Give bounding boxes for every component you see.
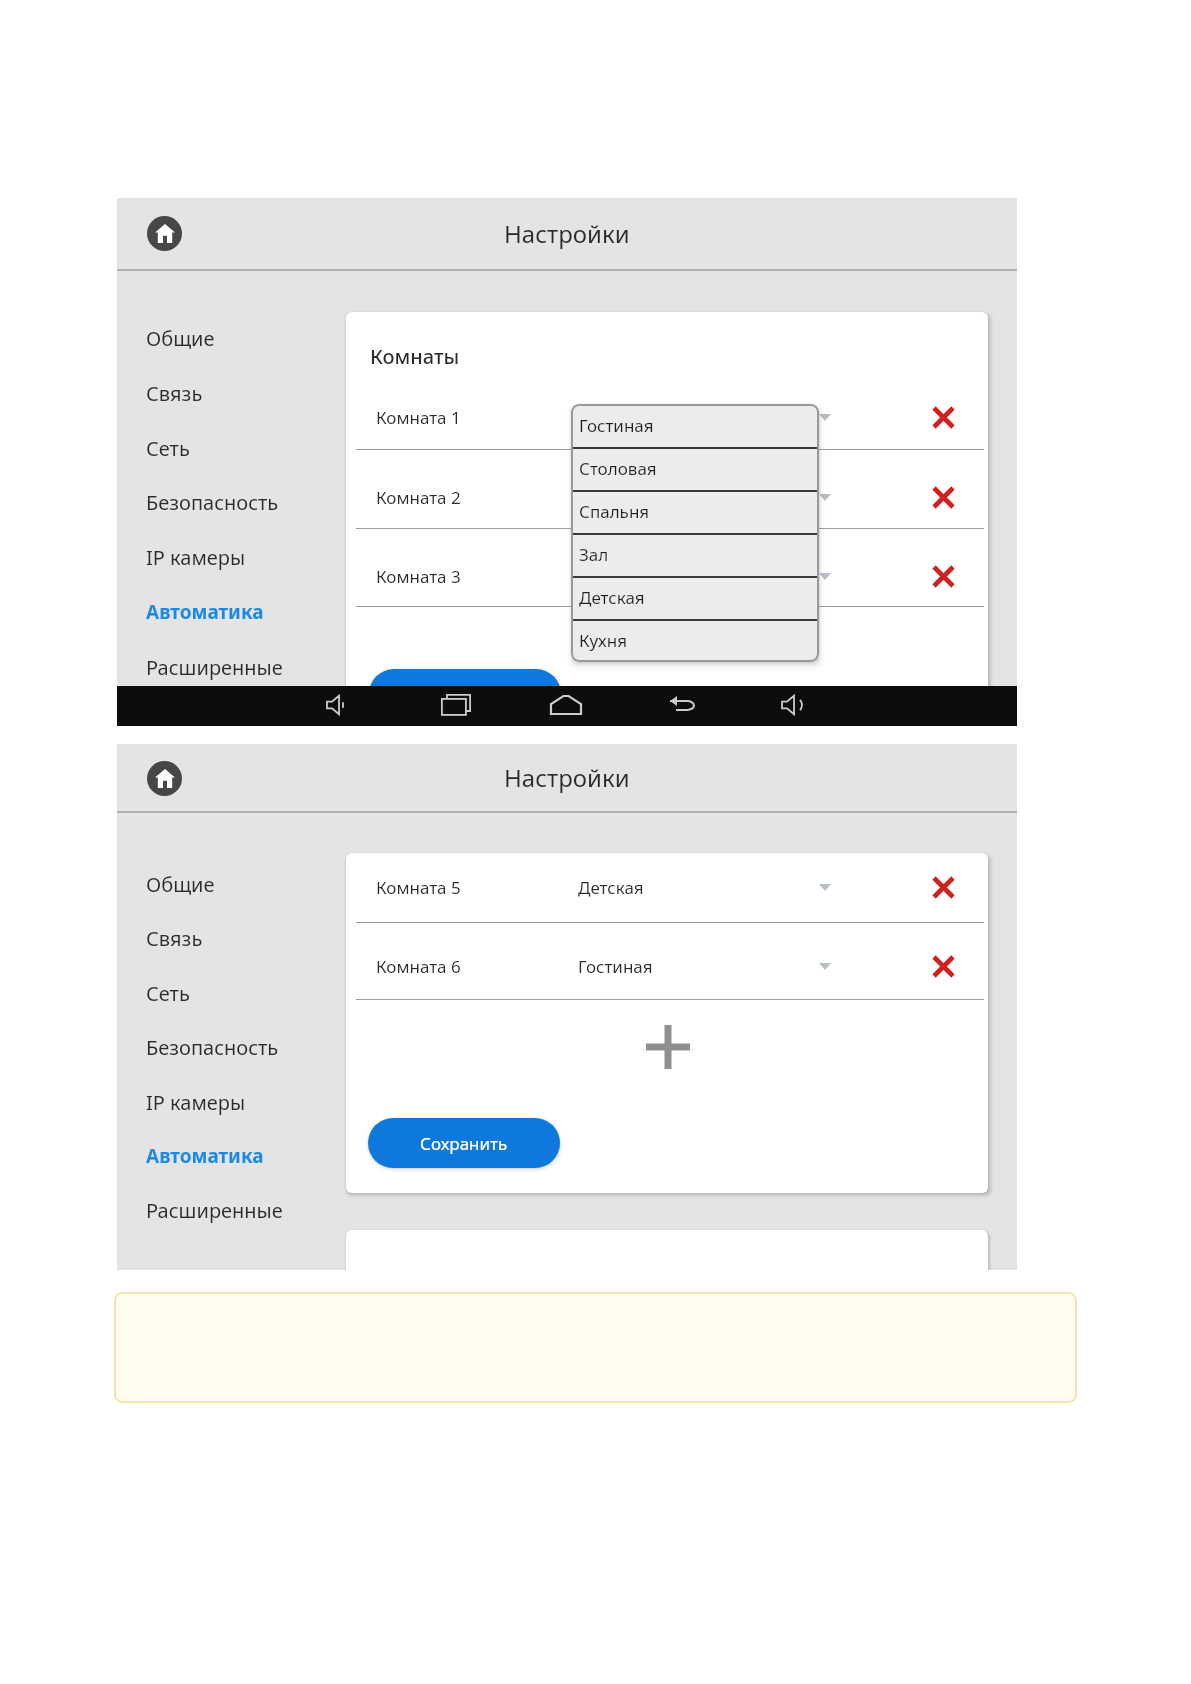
staticText: Автоматика xyxy=(146,1143,264,1169)
button[interactable]: Сеть xyxy=(146,432,346,464)
button[interactable]: Связь xyxy=(146,377,346,409)
button[interactable] xyxy=(638,1017,698,1077)
button[interactable] xyxy=(366,477,966,517)
button[interactable]: Безопасность xyxy=(146,1031,346,1063)
button[interactable] xyxy=(327,694,353,716)
button[interactable]: Общие xyxy=(146,868,346,900)
button[interactable]: Автоматика xyxy=(146,596,346,628)
staticText: Детская xyxy=(579,586,645,609)
staticText: Комнаты xyxy=(370,343,460,370)
staticText: Связь xyxy=(146,380,203,407)
button[interactable] xyxy=(366,946,966,986)
button[interactable] xyxy=(366,867,966,907)
staticText: Комната 2 xyxy=(376,486,461,509)
staticText: Расширенные xyxy=(146,1197,283,1224)
button[interactable]: Расширенные xyxy=(146,1194,346,1226)
staticText: Настройки xyxy=(504,217,630,250)
button[interactable] xyxy=(928,872,958,902)
staticText: Комната 5 xyxy=(376,876,461,899)
staticText: Общие xyxy=(146,325,215,352)
staticText: IP камеры xyxy=(146,1089,246,1116)
staticText: Комната 6 xyxy=(376,955,461,978)
button[interactable]: Зал xyxy=(571,533,819,576)
staticText: Комната 3 xyxy=(376,565,461,588)
staticText: Связь xyxy=(146,925,203,952)
staticText: Общие xyxy=(146,871,215,898)
button[interactable]: IP камеры xyxy=(146,541,346,573)
button[interactable]: Сеть xyxy=(146,977,346,1009)
staticText: Детская xyxy=(578,876,644,899)
button[interactable]: Сохранить xyxy=(368,1118,560,1168)
staticText: Столовая xyxy=(579,457,657,480)
button[interactable]: Спальня xyxy=(571,490,819,533)
staticText: Безопасность xyxy=(146,1034,279,1061)
button[interactable]: Автоматика xyxy=(146,1140,346,1172)
button[interactable] xyxy=(782,694,808,716)
staticText: IP камеры xyxy=(146,544,246,571)
button[interactable] xyxy=(928,951,958,981)
button[interactable]: Детская xyxy=(571,576,819,619)
button[interactable] xyxy=(369,669,561,719)
button[interactable] xyxy=(147,216,182,251)
button[interactable] xyxy=(366,556,966,596)
staticText: Сеть xyxy=(146,980,190,1007)
button[interactable] xyxy=(664,695,696,715)
button[interactable] xyxy=(366,397,966,437)
staticText: Автоматика xyxy=(146,599,264,625)
button[interactable] xyxy=(441,694,471,716)
staticText: Сеть xyxy=(146,435,190,462)
staticText: Гостиная xyxy=(579,414,654,437)
button[interactable] xyxy=(147,761,182,796)
button[interactable]: Столовая xyxy=(571,447,819,490)
button[interactable]: Расширенные xyxy=(146,651,346,683)
staticText: Зал xyxy=(579,543,609,566)
button[interactable] xyxy=(928,402,958,432)
button[interactable]: Гостиная xyxy=(571,404,819,447)
staticText: Кухня xyxy=(579,629,628,652)
staticText: Спальня xyxy=(579,500,650,523)
button[interactable]: Связь xyxy=(146,922,346,954)
staticText: Комната 1 xyxy=(376,406,461,429)
staticText: Настройки xyxy=(504,761,630,794)
staticText: Гостиная xyxy=(578,955,653,978)
button[interactable]: Безопасность xyxy=(146,486,346,518)
staticText: Безопасность xyxy=(146,489,279,516)
button[interactable] xyxy=(550,695,582,715)
staticText: Сохранить xyxy=(420,1132,508,1155)
button[interactable]: IP камеры xyxy=(146,1086,346,1118)
staticText: Расширенные xyxy=(146,654,283,681)
button[interactable] xyxy=(928,561,958,591)
button[interactable]: Общие xyxy=(146,322,346,354)
button[interactable]: Кухня xyxy=(571,619,819,662)
button[interactable] xyxy=(928,482,958,512)
